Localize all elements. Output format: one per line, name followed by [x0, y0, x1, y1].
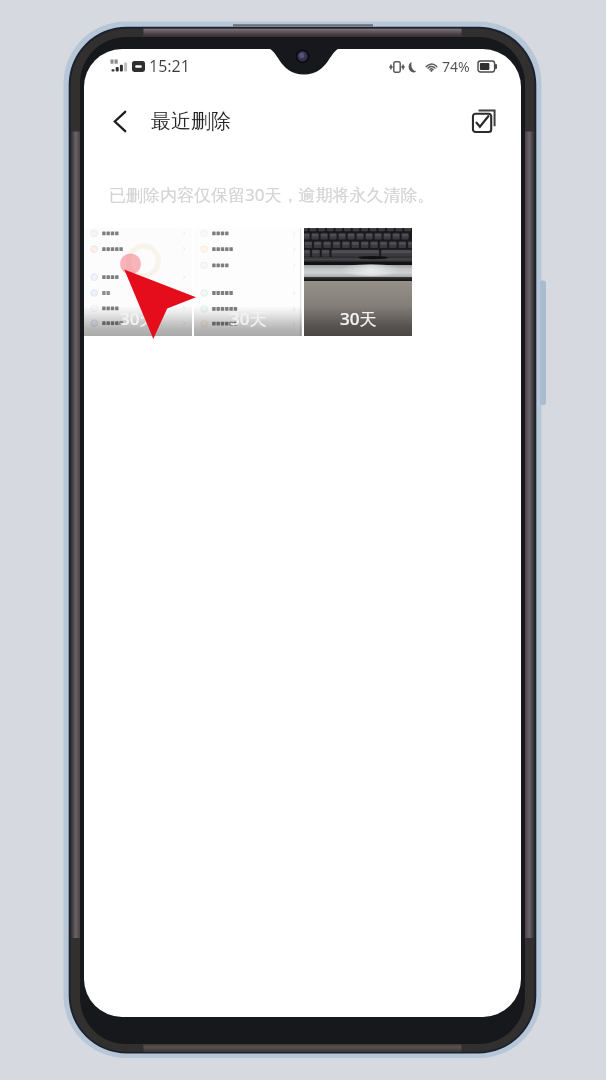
button[interactable]: 30天	[194, 228, 302, 336]
staticText: 30天	[230, 307, 267, 330]
staticText: 30天	[120, 307, 157, 330]
button[interactable]: 30天	[84, 228, 192, 336]
staticText: 74%	[442, 57, 470, 76]
staticText: 最近删除	[151, 109, 231, 134]
button[interactable]: Back	[98, 103, 142, 139]
staticText: 15:21	[149, 55, 190, 77]
button[interactable]: 30天	[304, 228, 412, 336]
staticText: 已删除内容仅保留30天，逾期将永久清除。	[109, 183, 435, 206]
button[interactable]: Select items	[462, 103, 506, 139]
staticText: 30天	[340, 307, 377, 330]
